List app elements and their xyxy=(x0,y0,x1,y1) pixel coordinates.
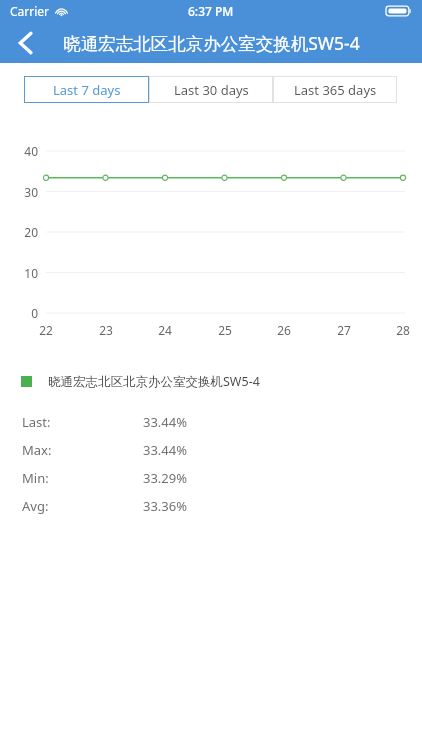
button[interactable]: 晓通宏志北区北京办公室交换机SW5-4 xyxy=(21,373,422,390)
staticText: 28 xyxy=(383,322,422,338)
button[interactable]: Back xyxy=(0,22,50,63)
button[interactable]: Max: xyxy=(0,436,422,464)
staticText: 33.44% xyxy=(143,413,188,431)
staticText: 40 xyxy=(0,143,38,159)
staticText: 晓通宏志北区北京办公室交换机SW5-4 xyxy=(48,373,260,390)
staticText: 23 xyxy=(86,322,126,338)
staticText: Last: xyxy=(22,413,51,431)
staticText: 30 xyxy=(0,184,38,200)
button[interactable]: Min: xyxy=(0,464,422,492)
button[interactable]: Avg: xyxy=(0,492,422,520)
staticText: 33.36% xyxy=(143,497,188,515)
staticText: 22 xyxy=(26,322,66,338)
staticText: 33.29% xyxy=(143,469,188,487)
staticText: 24 xyxy=(145,322,185,338)
staticText: 33.44% xyxy=(143,441,188,459)
button[interactable]: Last: xyxy=(0,408,422,436)
staticText: 6:37 PM xyxy=(188,3,234,19)
staticText: Carrier xyxy=(10,3,50,19)
staticText: 27 xyxy=(324,322,364,338)
staticText: Last 7 days xyxy=(53,81,121,99)
staticText: Last 30 days xyxy=(174,81,249,99)
staticText: 0 xyxy=(0,305,38,321)
staticText: 25 xyxy=(205,322,245,338)
button[interactable]: Last 30 days xyxy=(149,76,273,103)
button[interactable]: Last 365 days xyxy=(273,76,397,103)
staticText: 晓通宏志北区北京办公室交换机SW5-4 xyxy=(63,31,360,55)
staticText: 20 xyxy=(0,224,38,240)
staticText: 10 xyxy=(0,265,38,281)
staticText: Avg: xyxy=(22,497,49,515)
staticText: Max: xyxy=(22,441,52,459)
staticText: 26 xyxy=(264,322,304,338)
staticText: Last 365 days xyxy=(294,81,377,99)
button[interactable]: Last 7 days xyxy=(24,76,149,103)
staticText: Min: xyxy=(22,469,49,487)
